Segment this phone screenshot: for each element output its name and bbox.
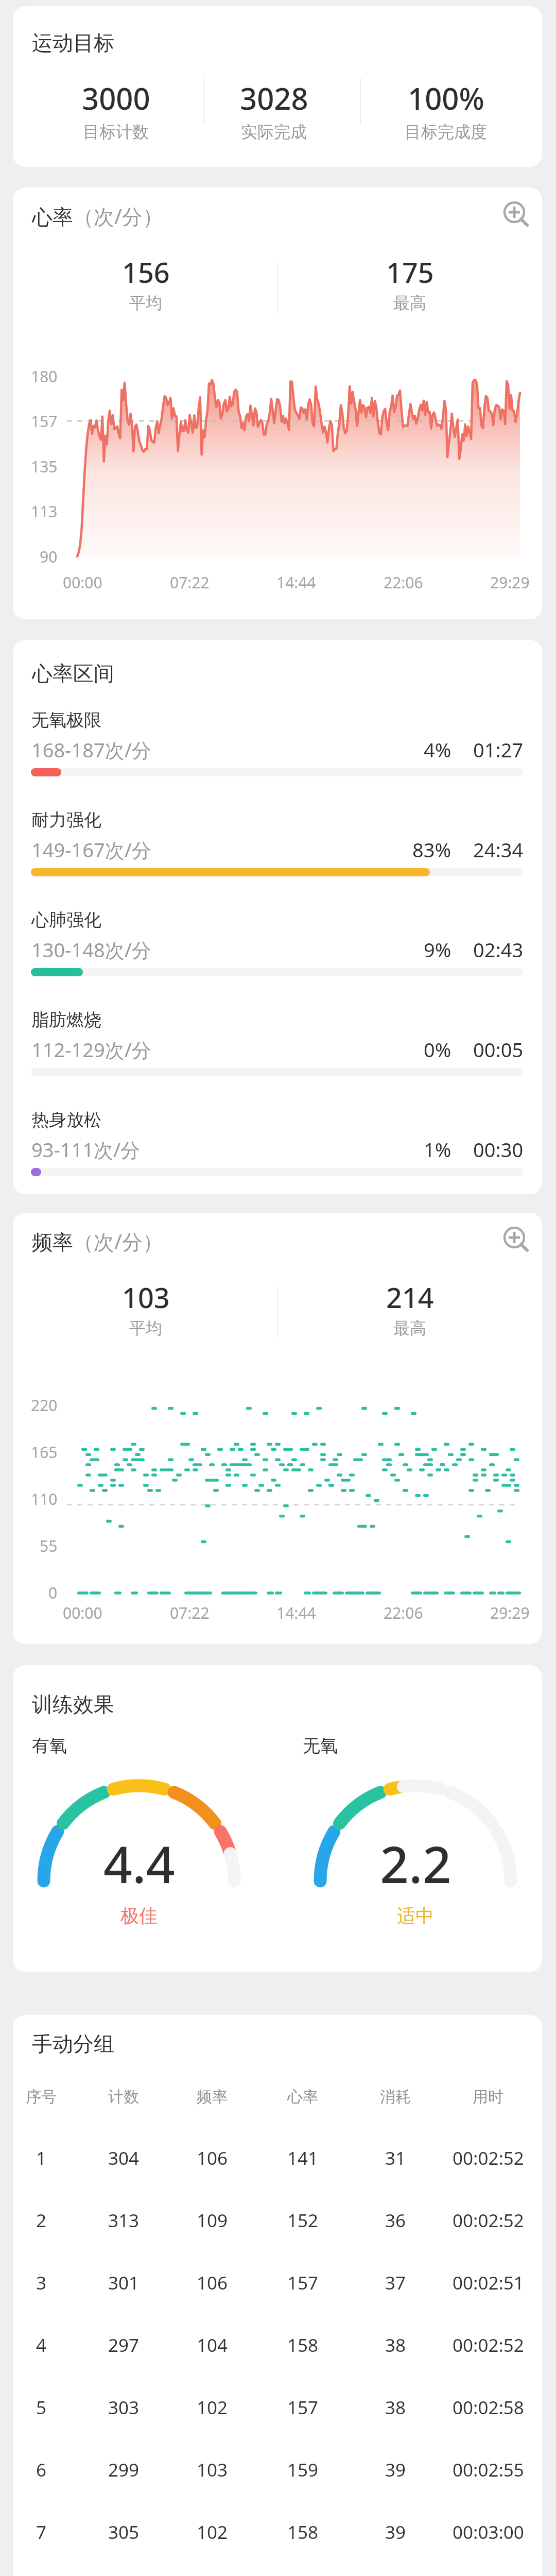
staticText: 手动分组 xyxy=(32,2031,114,2057)
button[interactable] xyxy=(498,1221,531,1254)
staticText: 157 xyxy=(287,2270,319,2295)
staticText: 106 xyxy=(197,2146,228,2171)
staticText: 最高 xyxy=(393,293,426,313)
staticText: 训练效果 xyxy=(32,1691,114,1717)
staticText: 313 xyxy=(108,2208,140,2233)
staticText: 112-129次/分 xyxy=(31,1036,151,1063)
staticText: 9% xyxy=(424,936,451,963)
staticText: 目标计数 xyxy=(83,122,149,142)
staticText: 7 xyxy=(36,2520,47,2545)
staticText: 2.2 xyxy=(380,1829,451,1891)
staticText: 07:22 xyxy=(170,572,210,593)
staticText: 4.4 xyxy=(103,1829,175,1891)
staticText: 39 xyxy=(385,2458,406,2482)
staticText: 175 xyxy=(386,253,434,291)
staticText: 00:00 xyxy=(63,572,102,593)
staticText: 305 xyxy=(108,2520,140,2545)
button[interactable] xyxy=(498,196,531,229)
staticText: 2 xyxy=(36,2208,47,2233)
staticText: 4% xyxy=(424,736,451,763)
staticText: 301 xyxy=(108,2270,140,2295)
staticText: 1 xyxy=(36,2146,47,2171)
staticText: 106 xyxy=(197,2270,228,2295)
staticText: 00:02:55 xyxy=(453,2458,524,2482)
staticText: 14:44 xyxy=(276,572,316,593)
staticText: 24:34 xyxy=(473,836,524,863)
staticText: 最高 xyxy=(393,1318,426,1338)
staticText: 3028 xyxy=(240,78,308,118)
staticText: 消耗 xyxy=(380,2087,411,2107)
staticText: 0 xyxy=(48,1582,58,1603)
staticText: 303 xyxy=(108,2395,140,2420)
staticText: 22:06 xyxy=(384,572,423,593)
staticText: 脂肪燃烧 xyxy=(31,1009,101,1031)
staticText: 运动目标 xyxy=(32,30,114,56)
staticText: 00:05 xyxy=(473,1036,524,1063)
staticText: 心肺强化 xyxy=(31,909,101,931)
staticText: 无氧极限 xyxy=(31,709,101,731)
staticText: 00:00 xyxy=(63,1602,102,1623)
staticText: 07:22 xyxy=(170,1602,210,1623)
staticText: 103 xyxy=(122,1278,170,1316)
staticText: 135 xyxy=(31,456,58,477)
staticText: 110 xyxy=(31,1488,58,1510)
staticText: 90 xyxy=(40,546,58,567)
staticText: 36 xyxy=(385,2208,406,2233)
staticText: 113 xyxy=(31,501,58,522)
staticText: 130-148次/分 xyxy=(31,936,151,963)
staticText: 31 xyxy=(385,2146,406,2171)
staticText: 计数 xyxy=(108,2087,139,2107)
staticText: 1% xyxy=(424,1136,451,1163)
staticText: 心率区间 xyxy=(32,660,114,686)
staticText: 3000 xyxy=(82,78,150,118)
staticText: 用时 xyxy=(473,2087,503,2107)
staticText: 29:29 xyxy=(490,572,530,593)
staticText: 00:02:52 xyxy=(453,2333,524,2358)
staticText: 165 xyxy=(31,1442,58,1463)
staticText: 00:02:52 xyxy=(453,2208,524,2233)
staticText: 00:02:52 xyxy=(453,2146,524,2171)
staticText: 297 xyxy=(108,2333,140,2358)
staticText: 102 xyxy=(197,2395,228,2420)
staticText: 3 xyxy=(36,2270,47,2295)
staticText: 心率（次/分） xyxy=(32,202,163,230)
staticText: 心率 xyxy=(287,2087,318,2107)
staticText: 158 xyxy=(287,2520,319,2545)
staticText: 299 xyxy=(108,2458,140,2482)
staticText: 39 xyxy=(385,2520,406,2545)
staticText: 00:03:00 xyxy=(453,2520,524,2545)
staticText: 4 xyxy=(36,2333,47,2358)
staticText: 152 xyxy=(287,2208,319,2233)
staticText: 214 xyxy=(386,1278,434,1316)
staticText: 180 xyxy=(31,366,58,387)
staticText: 0% xyxy=(424,1036,451,1063)
staticText: 6 xyxy=(36,2458,47,2482)
staticText: 00:02:51 xyxy=(453,2270,524,2295)
staticText: 157 xyxy=(287,2395,319,2420)
staticText: 104 xyxy=(197,2333,228,2358)
staticText: 极佳 xyxy=(120,1904,158,1927)
staticText: 14:44 xyxy=(276,1602,316,1623)
staticText: 耐力强化 xyxy=(31,809,101,831)
staticText: 平均 xyxy=(129,293,162,313)
staticText: 00:02:58 xyxy=(453,2395,524,2420)
staticText: 22:06 xyxy=(384,1602,423,1623)
staticText: 00:30 xyxy=(473,1136,524,1163)
staticText: 有氧 xyxy=(32,1735,67,1757)
staticText: 103 xyxy=(197,2458,228,2482)
staticText: 目标完成度 xyxy=(405,122,487,142)
staticText: 频率（次/分） xyxy=(32,1227,163,1256)
staticText: 01:27 xyxy=(473,736,524,763)
staticText: 无氧 xyxy=(303,1735,338,1757)
staticText: 02:43 xyxy=(473,936,524,963)
staticText: 168-187次/分 xyxy=(31,736,151,763)
staticText: 102 xyxy=(197,2520,228,2545)
staticText: 158 xyxy=(287,2333,319,2358)
staticText: 38 xyxy=(385,2395,406,2420)
staticText: 38 xyxy=(385,2333,406,2358)
staticText: 5 xyxy=(36,2395,47,2420)
staticText: 序号 xyxy=(26,2087,57,2107)
staticText: 100% xyxy=(408,78,484,118)
staticText: 149-167次/分 xyxy=(31,836,151,863)
staticText: 220 xyxy=(31,1395,58,1416)
